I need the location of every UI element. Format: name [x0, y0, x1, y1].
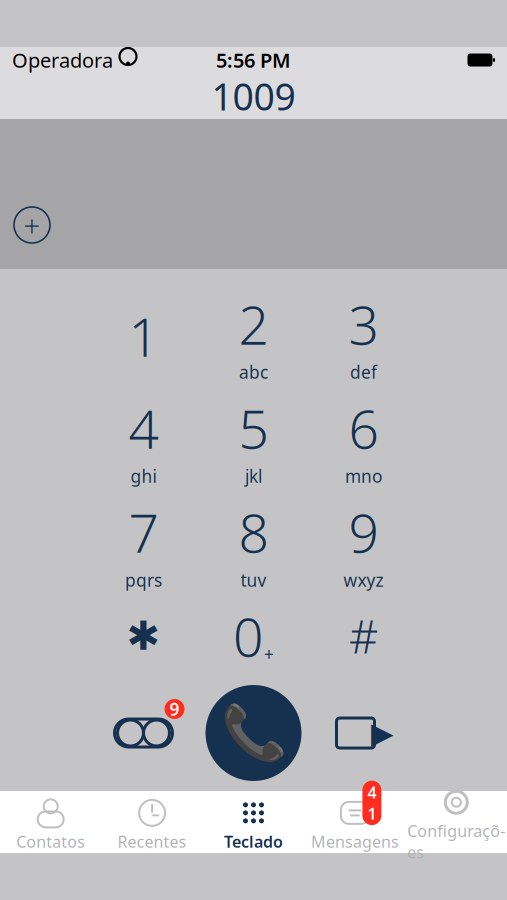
staticText: ▶ — [371, 716, 394, 750]
button[interactable]: 41 — [304, 792, 406, 852]
button[interactable]: 6 — [308, 397, 418, 483]
staticText: Recentes — [118, 831, 187, 852]
button[interactable]: 9 — [308, 501, 418, 587]
staticText: 0 — [233, 601, 263, 671]
staticText: 41 — [367, 782, 376, 824]
button[interactable]: Contatos — [0, 792, 101, 852]
button[interactable]: Recentes — [101, 792, 203, 852]
staticText: abc — [239, 360, 268, 383]
button[interactable]: 4 — [88, 397, 198, 483]
staticText: 3 — [348, 289, 378, 359]
staticText: pqrs — [125, 568, 162, 591]
button[interactable]: 2 — [198, 293, 308, 379]
staticText: 2 — [238, 289, 268, 359]
staticText: Teclado — [224, 831, 283, 852]
button[interactable]: ✱ — [88, 593, 198, 679]
staticText: Configurações — [407, 820, 505, 863]
button[interactable]: Voicemail — [88, 690, 198, 776]
staticText: 5 — [238, 393, 268, 463]
staticText: ghi — [130, 464, 156, 487]
staticText: 8 — [238, 497, 268, 567]
staticText: 6 — [348, 393, 378, 463]
button[interactable]: 8 — [198, 501, 308, 587]
staticText: Mensagens — [311, 831, 399, 852]
button[interactable]: Teclado — [203, 792, 304, 852]
button[interactable]: # — [308, 593, 418, 679]
staticText: jkl — [245, 464, 262, 487]
button[interactable]: Video call — [308, 690, 418, 776]
button[interactable]: 0 — [198, 593, 308, 679]
staticText: 5:56 PM — [216, 47, 291, 73]
staticText: 1 — [128, 301, 158, 371]
staticText: + — [264, 642, 274, 665]
staticText: mno — [345, 464, 382, 487]
staticText: 📞 — [220, 702, 286, 763]
staticText: Contatos — [16, 831, 85, 852]
staticText: + — [23, 205, 40, 244]
button[interactable]: 5 — [198, 397, 308, 483]
staticText: tuv — [240, 568, 266, 591]
staticText: 1009 — [211, 71, 295, 121]
staticText: 9 — [169, 697, 179, 720]
staticText: ✱ — [126, 613, 160, 659]
staticText: wxyz — [343, 568, 383, 591]
staticText: 9 — [348, 497, 378, 567]
staticText: Operadora — [12, 47, 113, 73]
staticText: 4 — [128, 393, 158, 463]
button[interactable]: Configurações — [406, 781, 507, 863]
button[interactable]: Call — [198, 683, 308, 783]
button[interactable]: 7 — [88, 501, 198, 587]
staticText: # — [349, 606, 378, 666]
staticText: def — [350, 360, 377, 383]
button[interactable]: Add contact — [10, 203, 54, 247]
button[interactable]: 3 — [308, 293, 418, 379]
staticText: 7 — [128, 497, 158, 567]
button[interactable]: 1 — [88, 293, 198, 379]
